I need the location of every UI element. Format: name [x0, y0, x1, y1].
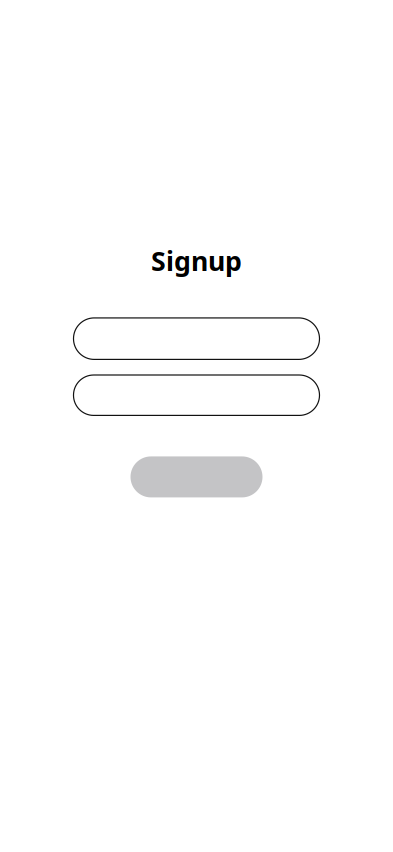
button[interactable]: Sign up	[130, 456, 262, 497]
staticText: Signup	[151, 243, 242, 278]
textField[interactable]	[73, 324, 319, 354]
secureTextField[interactable]	[73, 380, 319, 410]
